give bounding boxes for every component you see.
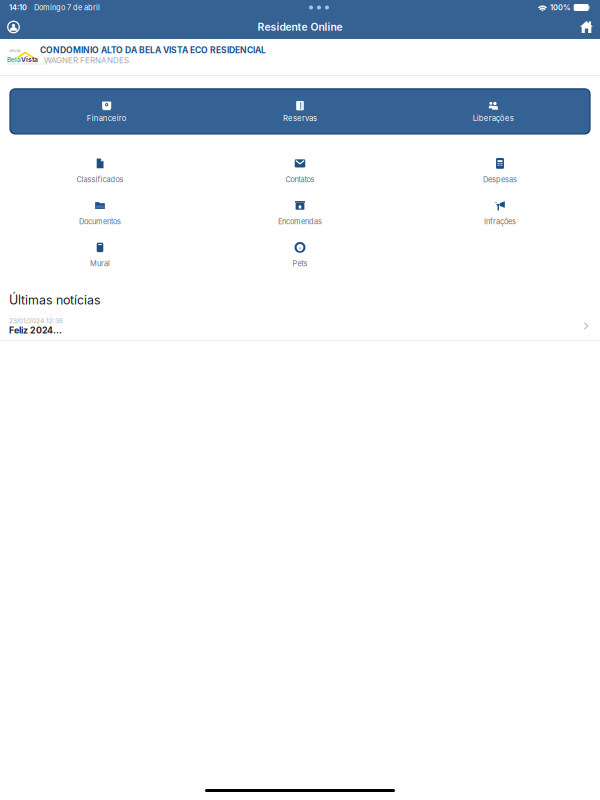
button[interactable]: Infrações: [400, 193, 600, 235]
staticText: Despesas: [483, 175, 517, 184]
staticText: Vista: [21, 56, 38, 64]
staticText: Encomendas: [278, 217, 322, 226]
button[interactable]: Reservas: [203, 89, 397, 134]
staticText: Mural: [90, 259, 110, 268]
button[interactable]: Início: [573, 15, 600, 39]
staticText: Reservas: [283, 113, 317, 123]
staticText: WAGNER FERNANDES: [44, 56, 129, 65]
staticText: Liberações: [473, 113, 514, 123]
button[interactable]: Pets: [200, 235, 400, 277]
staticText: alto da: [9, 48, 20, 53]
staticText: 14:10: [9, 3, 27, 12]
button[interactable]: Liberações: [397, 89, 590, 134]
button[interactable]: 23/01/2024 12:36: [0, 312, 600, 340]
button[interactable]: Perfil: [0, 15, 27, 39]
staticText: E C O R E S I D E N C I A L: [7, 62, 46, 65]
staticText: Infrações: [484, 217, 516, 226]
button[interactable]: Mural: [0, 235, 200, 277]
staticText: Classificados: [76, 175, 123, 184]
staticText: Pets: [292, 259, 307, 268]
staticText: 100%: [550, 3, 570, 12]
staticText: Documentos: [79, 217, 121, 226]
staticText: Residente Online: [257, 21, 342, 33]
button[interactable]: Contatos: [200, 151, 400, 193]
staticText: CONDOMINIO ALTO DA BELA VISTA ECO RESIDE…: [40, 45, 266, 55]
staticText: Contatos: [285, 175, 314, 184]
staticText: Financeiro: [87, 113, 127, 123]
button[interactable]: Despesas: [400, 151, 600, 193]
staticText: Bela: [7, 56, 21, 64]
staticText: Últimas notícias: [9, 292, 101, 307]
button[interactable]: Classificados: [0, 151, 200, 193]
staticText: Feliz 2024...: [9, 325, 62, 336]
button[interactable]: Documentos: [0, 193, 200, 235]
staticText: Domingo 7 de abril: [34, 3, 100, 12]
button[interactable]: Financeiro: [10, 89, 203, 134]
staticText: 23/01/2024 12:36: [9, 317, 63, 325]
button[interactable]: Encomendas: [200, 193, 400, 235]
